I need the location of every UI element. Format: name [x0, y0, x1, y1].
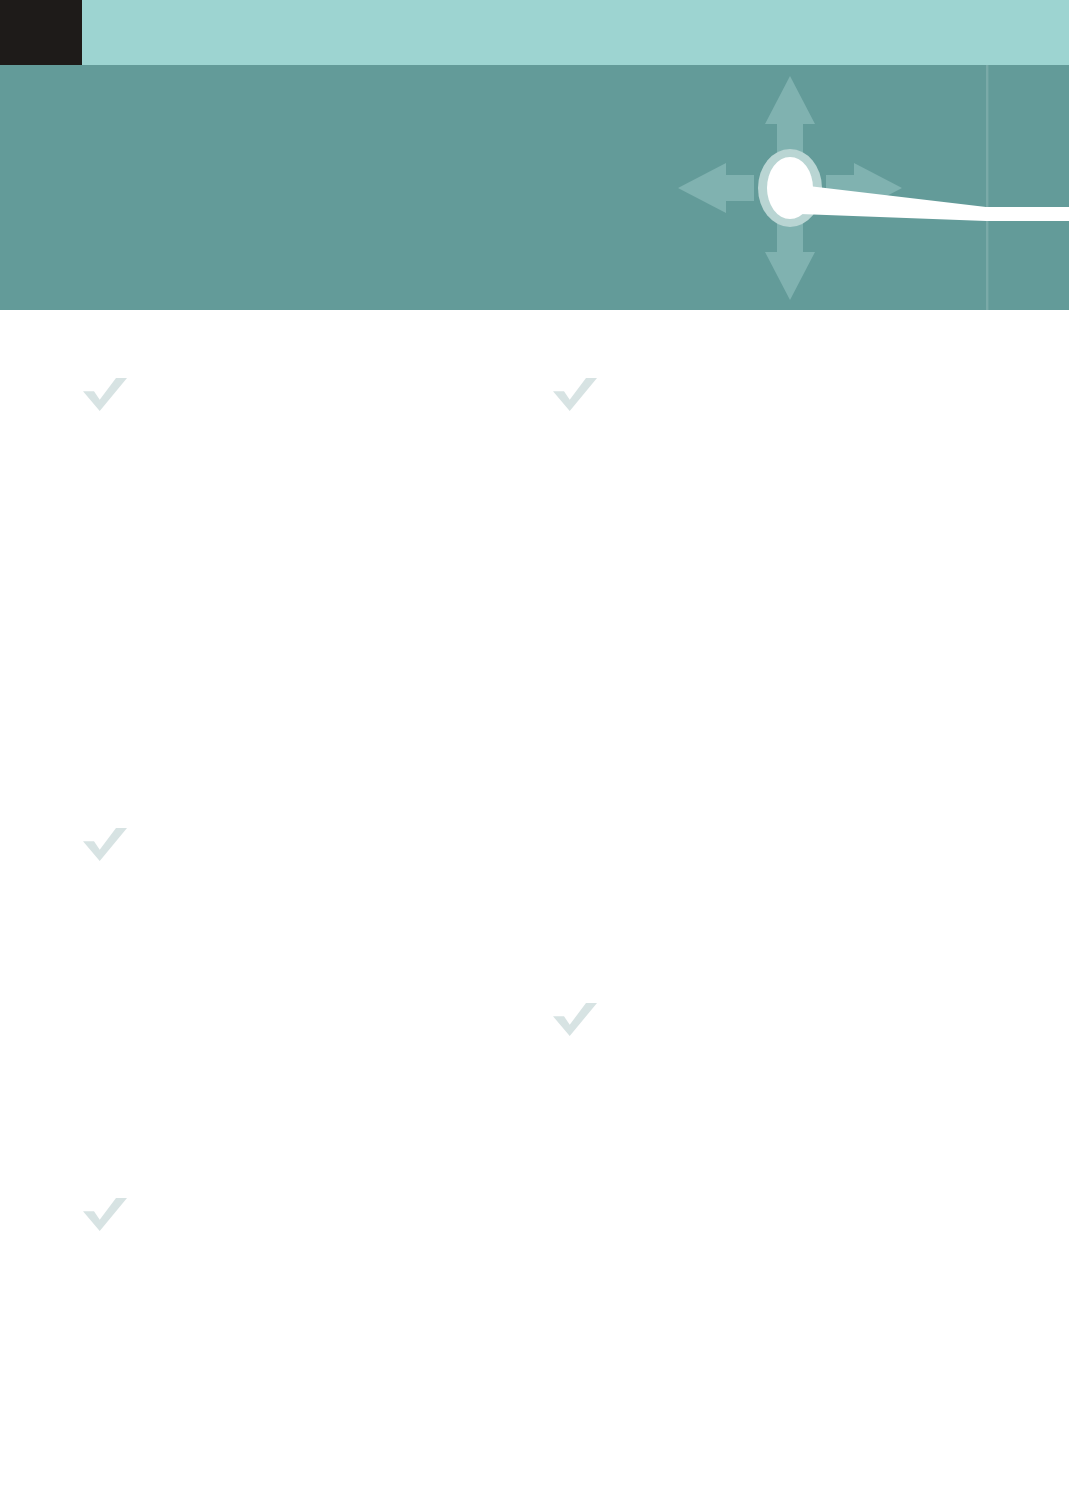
button[interactable]: Move: [0, 0, 1069, 1501]
